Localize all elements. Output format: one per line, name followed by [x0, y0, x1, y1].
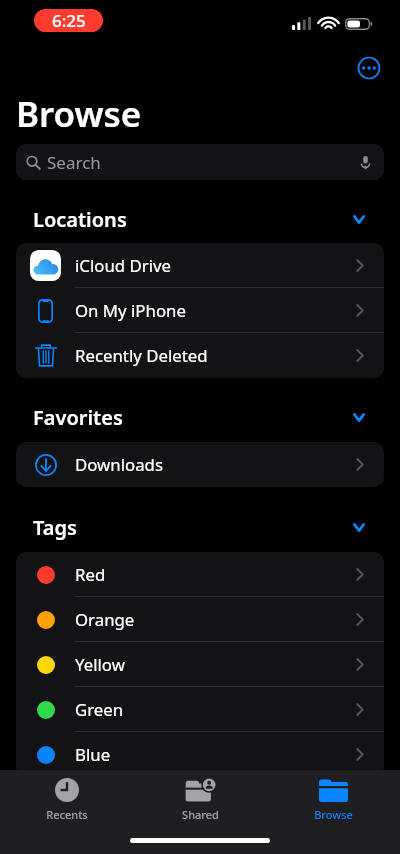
button[interactable]: Recents [0, 773, 134, 827]
staticText: 6:25 [52, 9, 86, 32]
button[interactable]: Search [16, 144, 384, 180]
staticText: Downloads [75, 453, 163, 476]
button[interactable]: Green [16, 687, 384, 732]
button[interactable]: Tags [33, 513, 365, 541]
staticText: On My iPhone [75, 299, 186, 322]
staticText: Tags [33, 514, 77, 541]
button[interactable]: More options [354, 53, 384, 83]
staticText: Yellow [75, 653, 125, 676]
button[interactable]: Locations [33, 205, 365, 233]
button[interactable]: Blue [16, 732, 384, 777]
staticText: Favorites [33, 404, 123, 431]
button[interactable]: Orange [16, 597, 384, 642]
staticText: iCloud Drive [75, 254, 172, 277]
button[interactable]: Red [16, 552, 384, 597]
button[interactable]: Favorites [33, 403, 365, 431]
staticText: Search [47, 151, 101, 174]
staticText: Recently Deleted [75, 344, 208, 367]
button[interactable]: Yellow [16, 642, 384, 687]
button[interactable]: Downloads [16, 442, 384, 487]
button[interactable]: Shared [134, 773, 267, 827]
staticText: Green [75, 698, 124, 721]
staticText: Locations [33, 206, 127, 233]
button[interactable]: On My iPhone [16, 288, 384, 333]
staticText: Blue [75, 743, 111, 766]
button[interactable]: Browse [267, 773, 400, 827]
button[interactable]: Recently Deleted [16, 333, 384, 378]
staticText: Shared [182, 807, 219, 822]
staticText: Red [75, 563, 106, 586]
staticText: Recents [46, 807, 88, 822]
staticText: Orange [75, 608, 135, 631]
button[interactable]: iCloud Drive [16, 243, 384, 288]
staticText: Browse [314, 807, 353, 822]
staticText: Browse [16, 90, 142, 138]
